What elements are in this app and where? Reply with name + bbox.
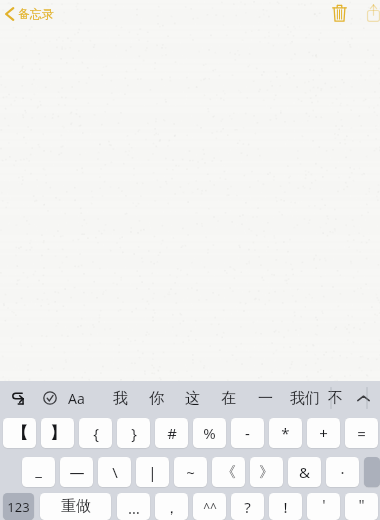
staticText: + bbox=[319, 423, 328, 443]
button[interactable]: Checklist bbox=[38, 383, 62, 413]
button[interactable]: 重做 bbox=[40, 493, 111, 520]
button[interactable]: " bbox=[345, 493, 378, 520]
button[interactable]: 我们 bbox=[284, 381, 326, 415]
button[interactable]: = bbox=[345, 418, 378, 448]
staticText: _ bbox=[35, 460, 42, 480]
button[interactable]: 备忘录 bbox=[5, 6, 54, 21]
button[interactable]: ! bbox=[269, 493, 302, 520]
button[interactable]: Undo bbox=[6, 383, 30, 413]
staticText: ^^ bbox=[203, 499, 217, 515]
button[interactable]: ? bbox=[231, 493, 264, 520]
staticText: 不 bbox=[328, 389, 343, 408]
staticText: " bbox=[358, 494, 365, 514]
button[interactable]: Delete note bbox=[324, 0, 354, 26]
staticText: & bbox=[299, 462, 310, 482]
staticText: 备忘录 bbox=[18, 6, 54, 21]
button[interactable]: 》 bbox=[250, 457, 283, 487]
staticText: 在 bbox=[221, 389, 236, 408]
staticText: 【 bbox=[12, 423, 28, 443]
button[interactable]: % bbox=[193, 418, 226, 448]
staticText: | bbox=[148, 462, 157, 482]
button[interactable]: ^^ bbox=[193, 493, 226, 520]
button[interactable]: ~ bbox=[174, 457, 207, 487]
button[interactable]: | bbox=[136, 457, 169, 487]
staticText: ! bbox=[283, 497, 288, 517]
staticText: 重做 bbox=[61, 497, 91, 516]
button[interactable]: { bbox=[79, 418, 112, 448]
staticText: 《 bbox=[221, 463, 236, 482]
button[interactable]: # bbox=[155, 418, 188, 448]
staticText: % bbox=[203, 423, 216, 443]
button[interactable]: 【 bbox=[3, 418, 36, 448]
button[interactable]: 我 bbox=[102, 381, 138, 415]
staticText: · bbox=[340, 462, 345, 482]
button[interactable]: 在 bbox=[210, 381, 246, 415]
staticText: — bbox=[69, 462, 85, 482]
staticText: 这 bbox=[185, 389, 200, 408]
staticText: = bbox=[357, 423, 366, 443]
button[interactable]: 】 bbox=[41, 418, 74, 448]
button[interactable]: } bbox=[117, 418, 150, 448]
button[interactable]: & bbox=[288, 457, 321, 487]
staticText: 123 bbox=[7, 498, 30, 516]
button[interactable]: 《 bbox=[212, 457, 245, 487]
staticText: 》 bbox=[259, 463, 274, 482]
staticText: { bbox=[93, 423, 99, 443]
staticText: ~ bbox=[186, 462, 195, 482]
button[interactable]: _ bbox=[22, 457, 55, 487]
staticText: * bbox=[281, 423, 290, 443]
button[interactable]: Text format bbox=[64, 383, 88, 413]
button[interactable]: · bbox=[326, 457, 359, 487]
staticText: 你 bbox=[149, 389, 164, 408]
button[interactable]: Share bbox=[360, 0, 380, 26]
staticText: } bbox=[131, 423, 137, 443]
staticText: # bbox=[167, 423, 177, 443]
staticText: 】 bbox=[50, 423, 66, 443]
staticText: … bbox=[128, 498, 140, 518]
button[interactable]: 这 bbox=[174, 381, 210, 415]
staticText: ' bbox=[322, 494, 326, 514]
button[interactable]: + bbox=[307, 418, 340, 448]
staticText: 我们 bbox=[290, 389, 320, 408]
button[interactable]: - bbox=[231, 418, 264, 448]
staticText: Aa bbox=[68, 389, 85, 408]
staticText: ， bbox=[164, 499, 179, 518]
staticText: 我 bbox=[113, 389, 128, 408]
button[interactable]: \ bbox=[98, 457, 131, 487]
button[interactable]: 123 bbox=[3, 493, 34, 520]
staticText: 一 bbox=[258, 389, 273, 408]
button[interactable]: 你 bbox=[138, 381, 174, 415]
button[interactable]: 不 bbox=[326, 381, 344, 415]
button[interactable]: ' bbox=[307, 493, 340, 520]
button[interactable]: Delete bbox=[364, 457, 380, 487]
staticText: - bbox=[245, 423, 250, 443]
button[interactable]: Hide keyboard bbox=[346, 381, 380, 415]
button[interactable]: … bbox=[117, 493, 150, 520]
staticText: ? bbox=[244, 497, 251, 517]
button[interactable]: 一 bbox=[246, 381, 284, 415]
button[interactable]: — bbox=[60, 457, 93, 487]
button[interactable]: * bbox=[269, 418, 302, 448]
button[interactable]: ， bbox=[155, 493, 188, 520]
staticText: \ bbox=[112, 462, 118, 482]
